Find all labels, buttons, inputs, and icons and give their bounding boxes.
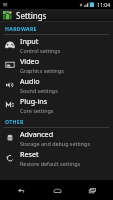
staticText: Reset xyxy=(20,149,39,159)
staticText: Video xyxy=(20,56,39,66)
staticText: Input xyxy=(20,36,39,46)
staticText: Plug-ins xyxy=(20,96,48,106)
button[interactable]: Plug-ins xyxy=(0,95,113,115)
staticText: Audio xyxy=(20,76,40,86)
button[interactable]: Audio xyxy=(0,75,113,95)
staticText: Restore default settings xyxy=(20,160,81,167)
staticText: Graphics settings xyxy=(20,67,64,74)
button[interactable]: Back xyxy=(10,180,32,200)
staticText: Control settings xyxy=(20,47,61,54)
staticText: OTHER xyxy=(5,118,24,125)
staticText: Storage and debug settings xyxy=(20,140,90,147)
staticText: 11:04 xyxy=(97,1,111,8)
button[interactable]: Home xyxy=(46,180,68,200)
button[interactable]: Video xyxy=(0,55,113,75)
button[interactable]: Input xyxy=(0,35,113,55)
button[interactable]: Reset xyxy=(0,148,113,168)
staticText: Sound settings xyxy=(20,87,58,94)
staticText: Settings xyxy=(16,10,47,21)
staticText: Core settings xyxy=(20,107,54,114)
staticText: Advanced xyxy=(20,129,54,139)
button[interactable]: Advanced xyxy=(0,128,113,148)
button[interactable]: Recent apps xyxy=(81,180,103,200)
staticText: HARDWARE xyxy=(5,25,37,32)
